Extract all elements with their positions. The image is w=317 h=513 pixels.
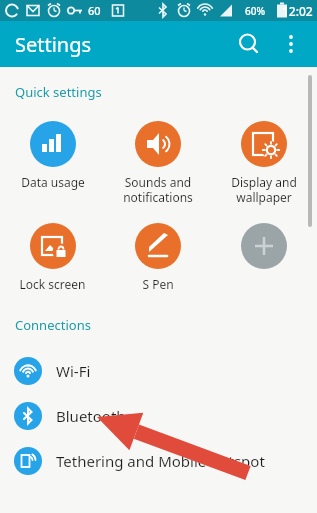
staticText: Lock screen (19, 276, 86, 292)
staticText: Tethering and Mobile hotspot (56, 451, 265, 471)
button[interactable]: S Pen (105, 221, 211, 294)
staticText: Data usage (21, 174, 85, 190)
button[interactable]: Data usage (0, 119, 105, 192)
button[interactable]: More options (271, 24, 311, 64)
button[interactable]: Search (229, 24, 269, 64)
staticText: 60 (88, 3, 101, 18)
button[interactable]: Wi-Fi (0, 348, 317, 393)
staticText: 60% (245, 4, 265, 18)
button[interactable]: Bluetooth (0, 393, 317, 438)
button[interactable]: Tethering and Mobile hotspot (0, 438, 317, 483)
button[interactable]: Lock screen (0, 221, 105, 294)
button[interactable]: Sounds and notifications (105, 119, 211, 207)
staticText: Wi-Fi (56, 361, 91, 381)
button[interactable]: Add (241, 223, 287, 269)
staticText: S Pen (142, 276, 174, 292)
button[interactable]: Add (211, 221, 317, 278)
staticText: Sounds and notifications (123, 174, 193, 205)
staticText: Display and wallpaper (231, 174, 297, 205)
staticText: 12:02 (282, 3, 313, 19)
staticText: Bluetooth (56, 406, 126, 426)
staticText: Settings (15, 31, 92, 58)
button[interactable]: Display and wallpaper (211, 119, 317, 207)
staticText: Quick settings (15, 83, 102, 101)
staticText: Connections (15, 316, 91, 334)
